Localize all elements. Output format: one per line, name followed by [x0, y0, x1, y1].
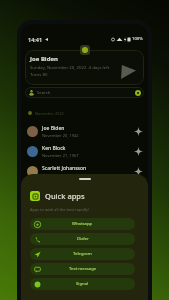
staticText: November 20, 1942 — [42, 133, 79, 138]
other: Send wishes — [134, 127, 143, 136]
staticText: Quick apps — [45, 191, 85, 201]
staticText: Text message — [69, 266, 97, 272]
staticText: Search — [37, 90, 51, 96]
staticText: Apps to wish all the best rapidly! — [30, 207, 89, 212]
button[interactable]: Scarlett Johansson — [21, 161, 148, 181]
button[interactable]: Signal — [30, 278, 135, 290]
other: Send wishes — [134, 167, 143, 176]
staticText: Joe Biden — [30, 55, 58, 63]
button[interactable]: Search contacts — [25, 87, 144, 98]
staticText: Sunday, November 20, 2022 4 days left — [30, 64, 110, 70]
staticText: Whatsapp — [72, 221, 93, 227]
other: Send wishes — [134, 147, 143, 156]
button[interactable]: Joe Biden — [21, 121, 148, 141]
button[interactable]: Dialer — [30, 233, 135, 245]
staticText: November 2022 — [35, 111, 64, 116]
button[interactable]: Joe Biden — [25, 50, 144, 85]
staticText: November 22, 1984 — [42, 173, 79, 178]
staticText: Turns 80 — [30, 71, 48, 77]
staticText: Dialer — [77, 236, 89, 242]
staticText: Scarlett Johansson — [42, 165, 87, 172]
staticText: Ken Block — [42, 145, 66, 152]
button[interactable]: Whatsapp — [30, 218, 135, 230]
staticText: November 21, 1967 — [42, 153, 79, 158]
button[interactable]: Ken Block — [21, 141, 148, 161]
staticText: 14:41 — [28, 36, 43, 43]
other: Search contacts — [29, 90, 34, 95]
staticText: Signal — [76, 281, 89, 287]
staticText: Telegram — [73, 251, 92, 257]
button[interactable]: Telegram — [30, 248, 135, 260]
staticText: 100% — [132, 36, 143, 42]
button[interactable]: Text message — [30, 263, 135, 275]
staticText: Joe Biden — [42, 125, 65, 132]
